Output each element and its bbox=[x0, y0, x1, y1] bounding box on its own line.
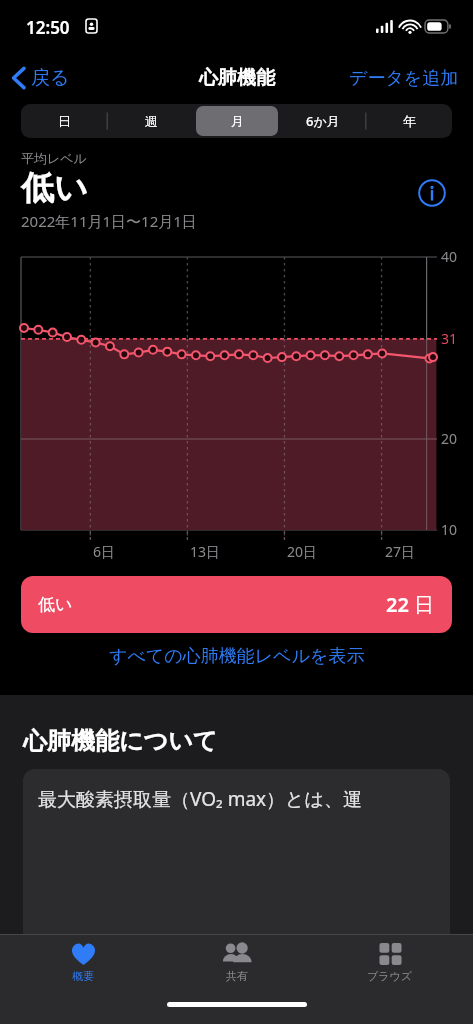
staticText: 22 日 bbox=[386, 591, 435, 618]
staticText: 月 bbox=[231, 113, 244, 129]
staticText: 6か月 bbox=[306, 112, 340, 130]
button[interactable]: 年 bbox=[368, 106, 450, 136]
staticText: 戻る bbox=[31, 66, 70, 90]
button[interactable]: 戻る bbox=[0, 60, 80, 96]
button[interactable]: 月 bbox=[196, 106, 278, 136]
staticText: 年 bbox=[403, 113, 416, 129]
button[interactable]: データを追加 bbox=[335, 59, 473, 98]
staticText: 日 bbox=[58, 113, 71, 129]
button[interactable]: 週 bbox=[110, 106, 192, 136]
button[interactable]: 低い bbox=[21, 576, 452, 633]
staticText: 13日 bbox=[190, 542, 221, 561]
staticText: 27日 bbox=[385, 542, 416, 561]
staticText: 共有 bbox=[226, 969, 248, 983]
staticText: 31 bbox=[441, 329, 469, 348]
staticText: 低い bbox=[21, 167, 88, 209]
staticText: ブラウズ bbox=[367, 969, 413, 983]
button[interactable]: 6か月 bbox=[282, 106, 364, 136]
staticText: 20日 bbox=[287, 542, 318, 561]
staticText: 6日 bbox=[93, 542, 116, 561]
button[interactable]: すべての心肺機能レベルを表示 bbox=[0, 633, 473, 680]
button[interactable]: ブラウズ bbox=[320, 935, 460, 993]
staticText: 心肺機能 bbox=[199, 66, 275, 90]
button[interactable]: 情報 bbox=[412, 173, 452, 213]
staticText: 低い bbox=[38, 594, 73, 615]
button[interactable]: 概要 bbox=[13, 935, 153, 993]
staticText: 10 bbox=[441, 520, 469, 539]
staticText: 12:50 bbox=[26, 16, 70, 39]
staticText: 平均レベル bbox=[21, 150, 87, 166]
staticText: 40 bbox=[441, 247, 469, 266]
staticText: 20 bbox=[441, 429, 469, 448]
button[interactable]: 共有 bbox=[167, 935, 307, 993]
staticText: 週 bbox=[145, 113, 158, 129]
button[interactable]: 日 bbox=[23, 106, 106, 136]
staticText: すべての心肺機能レベルを表示 bbox=[109, 645, 365, 668]
staticText: 心肺機能について bbox=[23, 726, 218, 756]
staticText: 概要 bbox=[72, 969, 94, 983]
staticText: 最大酸素摂取量（VO₂ max）とは、運 bbox=[38, 786, 363, 812]
button[interactable]: 最大酸素摂取量（VO₂ max）とは、運 bbox=[23, 769, 450, 1024]
staticText: 2022年11月1日〜12月1日 bbox=[21, 211, 197, 231]
